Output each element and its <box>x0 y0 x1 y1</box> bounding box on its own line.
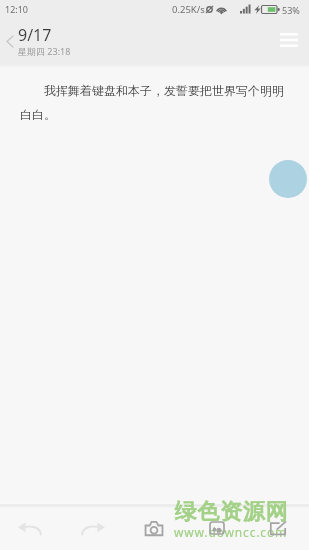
staticText: 绿色资源网 <box>174 498 288 526</box>
staticText: 12:10 <box>5 3 29 15</box>
staticText: 我挥舞着键盘和本子，发誓要把世界写个明明白白。 <box>20 82 295 122</box>
staticText: 53% <box>282 4 300 16</box>
staticText: 9/17 <box>18 24 52 46</box>
button[interactable]: Gallery <box>194 508 240 550</box>
button[interactable]: Camera <box>131 508 177 550</box>
button[interactable]: Back <box>0 22 20 60</box>
button[interactable]: Redo <box>70 508 116 550</box>
button[interactable]: Menu <box>269 20 309 60</box>
button[interactable]: Undo <box>6 508 52 550</box>
staticText: 0.25K/s <box>172 3 205 16</box>
staticText: www.downcc.com <box>174 524 288 540</box>
staticText: 星期四 23:18 <box>18 45 71 57</box>
button[interactable]: Checklist <box>255 508 301 550</box>
